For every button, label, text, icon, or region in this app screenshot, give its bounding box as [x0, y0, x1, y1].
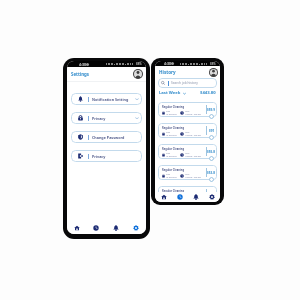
button[interactable]: Expand	[209, 198, 214, 202]
staticText: 88%	[136, 62, 142, 66]
button[interactable]: Profile	[133, 69, 143, 79]
button[interactable]: Home	[67, 222, 86, 234]
button[interactable]: Search job history	[158, 78, 217, 88]
staticText: 4:30	[79, 62, 87, 67]
button[interactable]: Privacy	[71, 112, 142, 124]
staticText: History	[159, 69, 176, 75]
staticText: 12 Oct 2024	[166, 176, 177, 179]
button[interactable]: Regular Cleaning	[158, 186, 217, 201]
staticText: $59.9	[207, 108, 215, 112]
staticText: 1:30 PM - 4:00 PM	[185, 134, 201, 137]
staticText: Privacy	[92, 154, 106, 159]
button[interactable]: Settings	[204, 192, 220, 202]
button[interactable]: Expand	[209, 177, 214, 182]
staticText: Time	[185, 152, 190, 155]
button[interactable]: Notification Setting	[71, 93, 142, 105]
staticText: $91	[209, 129, 215, 133]
staticText: $53.8	[207, 171, 215, 175]
button[interactable]: Expand	[209, 156, 214, 161]
button[interactable]: Regular Cleaning	[158, 165, 217, 180]
staticText: Regular Cleaning	[162, 168, 185, 172]
staticText: $60.2	[207, 192, 215, 196]
staticText: Time	[185, 131, 190, 134]
staticText: $443.80	[200, 90, 216, 96]
staticText: Notification Setting	[92, 97, 129, 102]
staticText: 1:30 PM - 4:00 PM	[185, 176, 201, 179]
staticText: 4:30	[164, 61, 172, 66]
staticText: Regular Cleaning	[162, 126, 185, 130]
staticText: Last Week	[159, 90, 181, 96]
button[interactable]: Notifications	[188, 192, 204, 202]
button[interactable]: History	[172, 192, 188, 202]
button[interactable]: Change Password	[71, 131, 142, 143]
staticText: Time	[185, 173, 190, 176]
button[interactable]: Regular Cleaning	[158, 102, 217, 117]
staticText: 1:30 PM - 4:00 PM	[185, 155, 201, 158]
button[interactable]: Privacy	[71, 150, 142, 162]
staticText: Date	[166, 110, 171, 113]
button[interactable]: History	[86, 222, 106, 234]
staticText: 12 Oct 2024	[166, 113, 177, 116]
staticText: Search job history	[171, 81, 198, 85]
button[interactable]: Expand	[209, 135, 214, 140]
staticText: 88%	[210, 62, 216, 66]
button[interactable]: Last Week	[159, 90, 186, 96]
staticText: $55.8	[207, 150, 215, 154]
button[interactable]: Expand	[209, 114, 214, 119]
staticText: Privacy	[92, 116, 106, 121]
staticText: Regular Cleaning	[162, 147, 185, 151]
staticText: 1:30 PM - 4:00 PM	[185, 197, 201, 200]
staticText: Date	[166, 173, 171, 176]
staticText: Regular Cleaning	[162, 189, 185, 193]
staticText: 1:30 PM - 4:00 PM	[185, 113, 201, 116]
staticText: Change Password	[92, 135, 125, 140]
staticText: Date	[166, 131, 171, 134]
button[interactable]: Profile	[209, 68, 218, 77]
staticText: 12 Oct 2024	[166, 155, 177, 158]
button[interactable]: Home	[155, 192, 172, 202]
staticText: 12 Oct 2024	[166, 134, 177, 137]
staticText: Settings	[71, 71, 89, 77]
staticText: Date	[166, 194, 171, 197]
staticText: Time	[185, 110, 190, 113]
button[interactable]: Regular Cleaning	[158, 123, 217, 138]
button[interactable]: Notifications	[106, 222, 126, 234]
staticText: Date	[166, 152, 171, 155]
button[interactable]: Regular Cleaning	[158, 144, 217, 159]
button[interactable]: Settings	[126, 222, 146, 234]
staticText: Regular Cleaning	[162, 105, 185, 109]
